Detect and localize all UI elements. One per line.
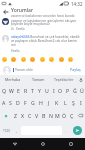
button[interactable]: Backspace [75,108,85,123]
staticText: . [65,128,67,133]
button[interactable]: W [8,84,15,96]
button[interactable]: T [29,84,36,96]
staticText: M [55,112,60,119]
staticText: D [16,99,20,106]
button[interactable]: P [64,84,71,96]
button[interactable]: F [21,96,29,108]
staticText: F [24,99,27,106]
button[interactable]: Paylaş [69,65,82,74]
button[interactable]: Reaction [10,56,17,63]
staticText: I [80,99,82,106]
staticText: yazarın ve başkalarının yorumları hepsi … [11,14,75,17]
button[interactable]: Back [0,7,11,17]
button[interactable]: Z [11,108,19,123]
staticText: 2s [11,27,14,31]
button[interactable]: Back [0,138,29,150]
staticText: Yanıtla [11,49,20,53]
staticText: N [49,112,53,119]
staticText: V [35,112,39,119]
staticText: I [53,87,55,94]
button[interactable]: M [54,108,61,123]
staticText: L [64,99,67,106]
button[interactable]: Reaction [29,56,36,63]
staticText: Yorum ekle [15,67,33,72]
staticText: Yorumlar [11,7,34,14]
staticText: Yanıtla [16,27,25,31]
staticText: Q [2,87,7,94]
staticText: Y [38,87,41,94]
button[interactable]: Ş [69,96,77,108]
staticText: K [55,99,59,106]
staticText: R [24,87,28,94]
button[interactable]: Send [70,123,85,138]
button[interactable]: Reaction [20,56,27,63]
button[interactable]: S [7,96,14,108]
button[interactable]: Reaction [58,56,65,63]
button[interactable]: Teşekkürler [51,75,77,84]
button[interactable]: R [22,84,29,96]
button[interactable]: B [40,108,47,123]
button[interactable]: Reaction [39,56,46,63]
staticText: W [9,87,14,94]
button[interactable]: Ü [78,84,85,96]
button[interactable]: Recents [57,138,85,150]
button[interactable]: O [57,84,64,96]
button[interactable]: H [37,96,45,108]
button[interactable]: N [47,108,54,123]
staticText: yazarın ve başkalarının görüşlerini okuy… [11,18,82,26]
button[interactable]: ?123 [0,123,13,138]
button[interactable]: Shift [0,108,11,123]
staticText: , [16,128,18,133]
staticText: S [9,99,12,106]
button[interactable]: Home [29,138,57,150]
button[interactable]: I [50,84,57,96]
button[interactable]: X [19,108,26,123]
button[interactable]: D [14,96,21,108]
staticText: G [31,99,35,106]
button[interactable]: V [33,108,40,123]
staticText: Merhaba [5,77,21,82]
button[interactable]: Reaction [1,56,8,63]
button[interactable]: Ö [61,108,68,123]
button[interactable]: Reaction [67,56,74,63]
staticText: Ğ [73,87,77,94]
button[interactable]: A [0,96,7,108]
staticText: Tamam [32,77,45,82]
staticText: Paylaş [70,67,81,72]
staticText: C [28,112,32,119]
button[interactable]: Tamam [25,75,51,84]
button[interactable]: K [53,96,61,108]
button[interactable]: I [77,96,85,108]
button[interactable]: Ğ [71,84,78,96]
button[interactable]: Voice input [77,75,85,84]
button[interactable]: E [15,84,22,96]
button[interactable]: J [45,96,53,108]
button[interactable]: G [29,96,37,108]
staticText: Ç [70,112,74,119]
button[interactable]: Merhaba [0,75,25,84]
button[interactable]: Y [36,84,43,96]
button[interactable]: C [26,108,33,123]
button[interactable]: Reaction [48,56,55,63]
button[interactable]: Ç [68,108,75,123]
staticText: A [2,99,6,106]
staticText: B [42,112,46,119]
button[interactable]: Q [0,84,8,96]
button[interactable]: U [43,84,50,96]
staticText: Ö [62,112,67,119]
button[interactable]: , [13,123,21,138]
staticText: J [48,99,50,106]
staticText: ?123 [3,129,10,133]
staticText: P [66,87,70,94]
staticText: X [21,112,25,119]
staticText: Ş [72,99,75,106]
button[interactable]: yazarın ve başkalarının görüşlerini okuy… [0,17,85,31]
staticText: Teşekkürler [54,77,74,82]
button[interactable]: aidaysh6666 Bunuhost ve çok hazırdılar, … [0,35,85,53]
staticText: aidaysh6666 Bunuhost ve çok hazırdılar, … [11,35,82,47]
button[interactable]: L [61,96,69,108]
staticText: T [31,87,34,94]
staticText: U [45,87,49,94]
